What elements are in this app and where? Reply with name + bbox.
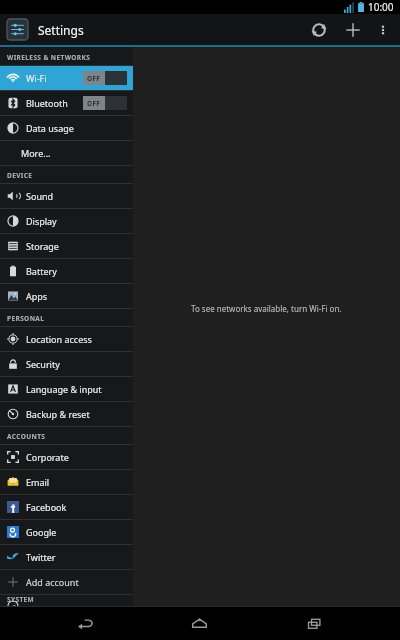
button[interactable]: Wi-Fi [0,66,133,90]
staticText: To see networks available, turn Wi-Fi on… [191,303,342,314]
button[interactable]: Sync [302,14,336,45]
staticText: Settings [38,22,84,38]
staticText: OFF [87,99,101,108]
button[interactable]: Bluetooth [0,91,133,115]
button[interactable]: Data usage [0,116,133,140]
button[interactable]: Security [0,352,133,376]
button[interactable]: Location access [0,327,133,351]
button[interactable]: Google [0,520,133,544]
staticText: Google [26,526,57,538]
button[interactable]: More options [370,14,396,45]
staticText: ACCOUNTS [7,432,46,441]
staticText: Twitter [26,551,56,563]
button[interactable]: Corporate [0,445,133,469]
button[interactable]: Language & input [0,377,133,401]
button[interactable]: OFF [83,96,127,110]
staticText: Apps [26,290,48,302]
staticText: Corporate [26,451,69,463]
staticText: OFF [87,74,101,83]
staticText: Email [26,476,50,488]
staticText: Sound [26,190,54,202]
staticText: Data usage [26,122,74,134]
button[interactable]: Sound [0,184,133,208]
button[interactable]: Backup & reset [0,402,133,426]
button[interactable]: Facebook [0,495,133,519]
staticText: WIRELESS & NETWORKS [7,53,91,62]
button[interactable]: Recent apps [285,607,343,640]
staticText: Bluetooth [26,97,68,109]
button[interactable]: Back [56,607,114,640]
button[interactable]: Twitter [0,545,133,569]
button[interactable]: Apps [0,284,133,308]
button[interactable]: Battery [0,259,133,283]
button[interactable]: Display [0,209,133,233]
staticText: Security [26,358,60,370]
staticText: More... [21,147,51,159]
button[interactable]: Storage [0,234,133,258]
staticText: Display [26,215,57,227]
staticText: Wi-Fi [26,72,47,84]
button[interactable]: Add [336,14,370,45]
staticText: Backup & reset [26,408,90,420]
staticText: PERSONAL [7,314,45,323]
button[interactable]: More... [0,141,133,165]
button[interactable]: Email [0,470,133,494]
staticText: Language & input [26,383,102,395]
staticText: DEVICE [7,171,33,180]
staticText: Location access [26,333,92,345]
staticText: 10:00 [368,0,394,14]
staticText: Facebook [26,501,67,513]
staticText: Storage [26,240,59,252]
staticText: Battery [26,265,57,277]
staticText: SYSTEM [7,595,35,603]
staticText: Add account [26,576,79,588]
button[interactable]: Home [170,607,228,640]
button[interactable]: OFF [83,71,127,85]
button[interactable]: Add account [0,570,133,594]
